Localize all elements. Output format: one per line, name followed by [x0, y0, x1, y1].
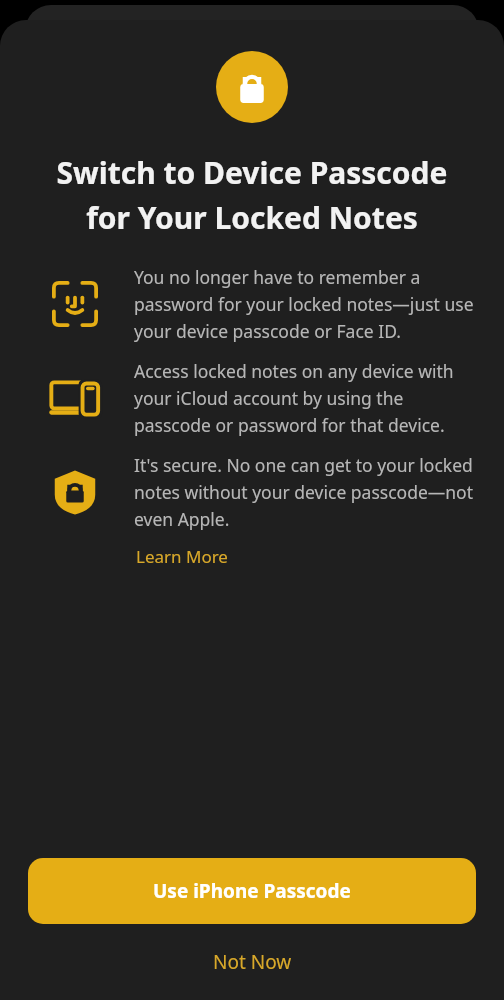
staticText: It's secure. No one can get to your lock… — [134, 453, 474, 531]
button[interactable]: Learn More — [134, 541, 230, 572]
staticText: You no longer have to remember a passwor… — [134, 265, 474, 343]
button[interactable]: Not Now — [0, 940, 504, 984]
staticText: Access locked notes on any device with y… — [134, 359, 474, 437]
staticText: Use iPhone Passcode — [153, 878, 351, 904]
staticText: Not Now — [213, 949, 292, 975]
staticText: Switch to Device Passcode for Your Locke… — [52, 152, 452, 237]
button[interactable]: Use iPhone Passcode — [28, 858, 476, 924]
staticText: Learn More — [136, 545, 228, 568]
